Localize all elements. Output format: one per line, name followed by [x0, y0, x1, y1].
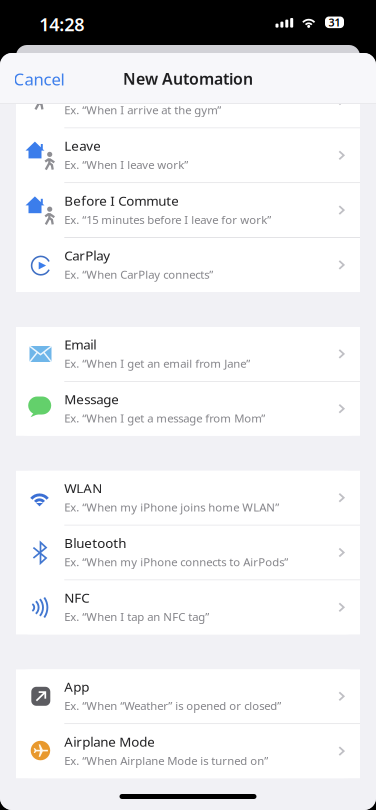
staticText: Ex. “When I get an email from Jane” — [64, 356, 250, 371]
staticText: 14:28 — [39, 12, 84, 36]
staticText: Ex. “15 minutes before I leave for work” — [64, 212, 271, 227]
button[interactable]: WLAN — [16, 471, 360, 525]
staticText: Ex. “When “Weather” is opened or closed” — [64, 698, 281, 713]
button[interactable]: Email — [16, 327, 360, 381]
button[interactable]: Before I Commute — [16, 183, 360, 237]
staticText: Ex. “When I tap an NFC tag” — [64, 609, 209, 624]
staticText: Ex. “When I arrive at the gym” — [64, 102, 221, 117]
staticText: Ex. “When I get a message from Mom” — [64, 411, 265, 426]
staticText: CarPlay — [64, 246, 110, 264]
staticText: NFC — [64, 589, 89, 606]
button[interactable]: Cancel — [0, 61, 77, 97]
staticText: Ex. “When Airplane Mode is turned on” — [64, 753, 268, 768]
button[interactable]: Airplane Mode — [16, 724, 360, 778]
button[interactable]: NFC — [16, 580, 360, 634]
staticText: Ex. “When my iPhone connects to AirPods” — [64, 554, 288, 569]
button[interactable]: Bluetooth — [16, 526, 360, 580]
staticText: Before I Commute — [64, 192, 179, 209]
staticText: Ex. “When my iPhone joins home WLAN” — [64, 500, 279, 515]
button[interactable]: Arrive — [16, 74, 360, 128]
button[interactable]: Leave — [16, 128, 360, 182]
staticText: Message — [64, 390, 119, 408]
staticText: Ex. “When I leave work” — [64, 157, 188, 172]
staticText: New Automation — [123, 68, 253, 89]
staticText: Ex. “When CarPlay connects” — [64, 267, 213, 282]
staticText: Bluetooth — [64, 534, 126, 552]
staticText: 31 — [328, 15, 340, 29]
staticText: App — [64, 678, 89, 695]
button[interactable]: App — [16, 669, 360, 723]
button[interactable]: Message — [16, 382, 360, 436]
button[interactable]: CarPlay — [16, 238, 360, 292]
staticText: Airplane Mode — [64, 733, 155, 750]
staticText: WLAN — [64, 479, 102, 497]
staticText: Email — [64, 335, 96, 353]
staticText: Leave — [64, 137, 101, 154]
staticText: Cancel — [13, 68, 64, 90]
